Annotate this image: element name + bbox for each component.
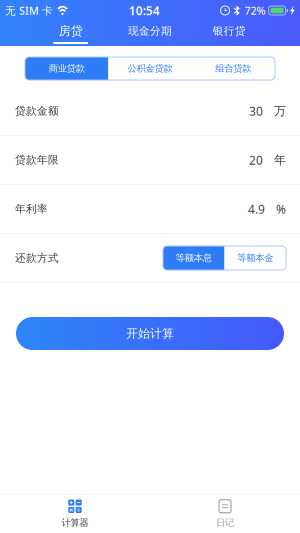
staticText: 年利率 bbox=[15, 202, 48, 215]
staticText: 还款方式 bbox=[15, 251, 59, 264]
button[interactable]: 开始计算 bbox=[16, 317, 284, 350]
staticText: 年 bbox=[274, 153, 286, 167]
staticText: 现金分期 bbox=[128, 24, 172, 37]
staticText: 公积金贷款 bbox=[127, 63, 172, 74]
staticText: 计算器 bbox=[61, 517, 88, 528]
button[interactable]: 公积金贷款 bbox=[108, 57, 192, 80]
button[interactable]: 商业贷款 bbox=[25, 57, 108, 80]
staticText: 开始计算 bbox=[126, 326, 174, 341]
staticText: 30 bbox=[249, 103, 263, 119]
staticText: 等额本息 bbox=[176, 252, 212, 264]
staticText: % bbox=[276, 201, 286, 217]
button[interactable]: 银行贷 bbox=[190, 21, 269, 46]
staticText: 日记 bbox=[216, 517, 234, 528]
button[interactable]: 现金分期 bbox=[110, 21, 190, 46]
staticText: 银行贷 bbox=[213, 24, 246, 37]
staticText: 72% bbox=[245, 3, 266, 18]
staticText: 商业贷款 bbox=[49, 63, 85, 74]
staticText: 10:54 bbox=[129, 2, 160, 18]
button[interactable]: 日记 bbox=[150, 495, 300, 533]
staticText: 20 bbox=[249, 152, 263, 168]
button[interactable]: 房贷 bbox=[31, 21, 110, 46]
button[interactable]: 等额本金 bbox=[224, 246, 286, 270]
staticText: 万 bbox=[274, 104, 286, 118]
staticText: 4.9 bbox=[248, 201, 265, 217]
staticText: 房贷 bbox=[59, 24, 83, 38]
button[interactable]: 等额本息 bbox=[163, 246, 224, 270]
staticText: 贷款年限 bbox=[15, 153, 59, 166]
staticText: 组合贷款 bbox=[215, 63, 251, 74]
staticText: 等额本金 bbox=[237, 252, 273, 264]
staticText: 无 SIM 卡 bbox=[5, 3, 53, 18]
staticText: 贷款金额 bbox=[15, 104, 59, 117]
button[interactable]: 组合贷款 bbox=[192, 57, 275, 80]
button[interactable]: 计算器 bbox=[0, 495, 150, 533]
